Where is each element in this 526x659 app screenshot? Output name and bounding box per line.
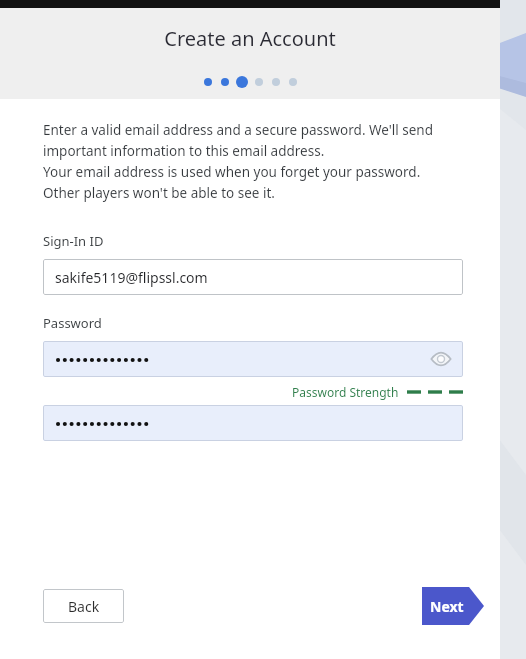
button[interactable]: Show password: [428, 346, 454, 372]
staticText: Back: [68, 597, 100, 616]
button[interactable]: Show password: [43, 341, 463, 377]
staticText: important information to this email addr…: [43, 142, 325, 160]
button[interactable]: [43, 405, 463, 441]
staticText: Enter a valid email address and a secure…: [43, 121, 434, 139]
staticText: Password: [43, 314, 102, 332]
staticText: Other players won't be able to see it.: [43, 184, 275, 202]
staticText: Sign-In ID: [43, 232, 104, 250]
staticText: Your email address is used when you forg…: [43, 163, 421, 181]
staticText: Password Strength: [292, 384, 399, 400]
staticText: sakife5119@flipssl.com: [55, 268, 208, 287]
staticText: Next: [430, 597, 464, 616]
button[interactable]: Back: [43, 589, 124, 623]
button[interactable]: Next: [422, 587, 484, 625]
staticText: Create an Account: [0, 25, 500, 52]
button[interactable]: sakife5119@flipssl.com: [43, 259, 463, 295]
